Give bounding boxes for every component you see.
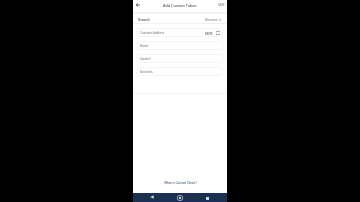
staticText: Network <box>138 18 150 22</box>
button[interactable]: Home <box>176 194 184 202</box>
button[interactable]: SAVE <box>218 3 225 7</box>
button[interactable]: Contract Address <box>137 28 223 37</box>
button[interactable]: Back <box>148 193 156 201</box>
button[interactable]: Name <box>137 41 223 50</box>
staticText: What is Custom Token? <box>164 181 197 185</box>
button[interactable]: Decimals <box>137 67 223 76</box>
button[interactable]: What is Custom Token? <box>164 181 197 185</box>
staticText: Add Custom Token <box>163 3 197 8</box>
button[interactable]: Scan QR code <box>216 31 220 35</box>
staticText: SAVE <box>218 3 225 7</box>
button[interactable]: Symbol <box>137 54 223 63</box>
staticText: Name <box>140 44 149 48</box>
button[interactable]: Back <box>134 1 142 9</box>
button[interactable]: Recent apps <box>203 194 211 202</box>
button[interactable]: Network <box>138 14 221 23</box>
staticText: Ethereum <box>205 18 218 22</box>
staticText: PASTE <box>205 32 213 35</box>
staticText: Contract Address <box>140 31 165 35</box>
button[interactable]: PASTE <box>205 32 213 35</box>
staticText: Decimals <box>140 70 153 74</box>
staticText: Symbol <box>140 57 151 61</box>
